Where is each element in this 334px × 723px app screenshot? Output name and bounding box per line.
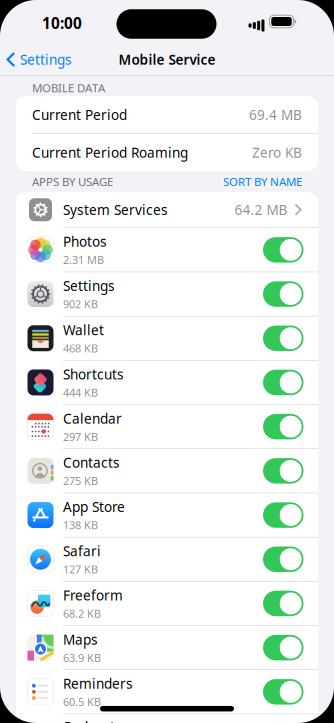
- button[interactable]: System Services: [16, 192, 318, 227]
- staticText: Settings: [63, 277, 115, 295]
- button[interactable]: Maps: [263, 635, 303, 660]
- staticText: 138 KB: [63, 518, 98, 532]
- staticText: Safari: [63, 542, 101, 560]
- button[interactable]: Back to Settings: [6, 50, 72, 69]
- button[interactable]: Photos: [263, 237, 303, 263]
- button[interactable]: Reminders: [263, 679, 303, 705]
- staticText: SORT BY NAME: [223, 174, 302, 189]
- staticText: 297 KB: [63, 429, 98, 444]
- button[interactable]: Wallet: [263, 325, 303, 351]
- staticText: MOBILE DATA: [32, 80, 105, 95]
- staticText: 127 KB: [63, 562, 98, 576]
- staticText: 468 KB: [63, 341, 98, 355]
- staticText: Settings: [20, 50, 72, 69]
- button[interactable]: Shortcuts: [263, 370, 303, 395]
- button[interactable]: Calendar: [263, 414, 303, 439]
- staticText: Current Period Roaming: [32, 143, 188, 162]
- staticText: 69.4 MB: [249, 106, 302, 124]
- button[interactable]: Settings: [263, 281, 303, 307]
- staticText: 902 KB: [63, 297, 98, 311]
- staticText: APPS BY USAGE: [32, 174, 113, 189]
- staticText: Calendar: [63, 409, 122, 427]
- staticText: Maps: [63, 630, 98, 648]
- staticText: 60.5 KB: [63, 695, 101, 709]
- staticText: System Services: [63, 201, 168, 219]
- staticText: 68.2 KB: [63, 606, 101, 621]
- staticText: Reminders: [63, 675, 133, 693]
- staticText: Wallet: [63, 321, 104, 339]
- staticText: Photos: [63, 233, 107, 251]
- staticText: Current Period: [32, 106, 127, 124]
- staticText: 64.2 MB: [234, 201, 287, 219]
- button[interactable]: Contacts: [263, 458, 303, 484]
- staticText: Zero KB: [252, 143, 302, 162]
- staticText: Shortcuts: [63, 365, 124, 383]
- staticText: 63.9 KB: [63, 650, 101, 665]
- staticText: Freeform: [63, 586, 123, 604]
- staticText: Podcasts: [64, 718, 122, 723]
- staticText: 275 KB: [63, 474, 98, 488]
- button[interactable]: App Store: [263, 502, 303, 528]
- button[interactable]: Freeform: [263, 591, 303, 616]
- staticText: 2.31 MB: [63, 253, 104, 267]
- button[interactable]: Safari: [263, 546, 303, 572]
- staticText: 444 KB: [63, 385, 98, 400]
- staticText: App Store: [63, 498, 125, 516]
- button[interactable]: SORT BY NAME: [223, 174, 302, 189]
- staticText: 10:00: [42, 13, 82, 33]
- staticText: Contacts: [63, 454, 120, 472]
- staticText: Mobile Service: [118, 50, 215, 69]
